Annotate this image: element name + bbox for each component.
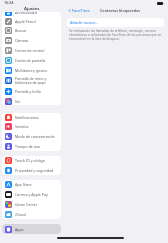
button[interactable]: Modo de concentración (2, 131, 61, 141)
button[interactable]: Sonidos (2, 122, 61, 131)
button[interactable]: FaceTime (63, 8, 93, 13)
staticText: Sonidos (15, 124, 29, 129)
button[interactable]: Buscar (2, 26, 61, 35)
staticText: Pantalla y brillo (15, 89, 41, 94)
button[interactable]: iCloud (2, 209, 61, 219)
staticText: Ajustes (24, 6, 40, 12)
button[interactable]: Tiempo de uso (2, 141, 61, 151)
staticText: Fondo de pantalla (15, 58, 46, 63)
staticText: 16:34 (4, 0, 14, 5)
staticText: Game Center (15, 202, 38, 207)
staticText: Modo de concentración (15, 134, 55, 139)
staticText: Multitarea y gestos (15, 68, 48, 73)
staticText: Se rechazarán las llamadas de teléfono, … (69, 29, 162, 41)
staticText: iCloud (15, 212, 26, 217)
staticText: Añadir nuevo... (70, 20, 99, 25)
staticText: Apps (15, 227, 24, 232)
button[interactable]: App Store (2, 180, 61, 189)
button[interactable]: Cámara (2, 35, 61, 45)
button[interactable]: Pantalla de inicio y biblioteca de apps (2, 75, 61, 86)
staticText: Touch ID y código (15, 158, 45, 163)
button[interactable]: Accesibilidad (2, 12, 61, 17)
staticText: Cartera y Apple Pay (15, 192, 48, 197)
staticText: Cámara (15, 38, 29, 43)
button[interactable]: Fondo de pantalla (2, 55, 61, 65)
button[interactable]: Multitarea y gestos (2, 65, 61, 75)
button[interactable]: Privacidad y seguridad (2, 165, 61, 175)
button[interactable]: Añadir nuevo... (67, 18, 164, 27)
staticText: Contactos bloqueados (100, 8, 141, 13)
staticText: Buscar (15, 28, 27, 33)
staticText: Accesibilidad (15, 12, 37, 15)
staticText: Pantalla de inicio y biblioteca de apps (15, 76, 47, 85)
button[interactable]: Siri (2, 96, 61, 105)
staticText: Siri (15, 99, 21, 104)
staticText: FaceTime (72, 8, 90, 13)
button[interactable]: Apps (2, 224, 61, 234)
button[interactable]: Apple Pencil (2, 17, 61, 26)
staticText: Tiempo de uso (15, 144, 40, 149)
staticText: Centro de control (15, 48, 45, 53)
staticText: Notificaciones (15, 115, 39, 120)
button[interactable]: Cartera y Apple Pay (2, 189, 61, 199)
button[interactable]: Touch ID y código (2, 156, 61, 165)
staticText: App Store (15, 182, 32, 187)
staticText: Privacidad y seguridad (15, 168, 54, 173)
button[interactable]: Centro de control (2, 45, 61, 55)
button[interactable]: Pantalla y brillo (2, 86, 61, 96)
button[interactable]: Game Center (2, 199, 61, 209)
button[interactable]: Notificaciones (2, 113, 61, 122)
staticText: Apple Pencil (15, 19, 36, 24)
